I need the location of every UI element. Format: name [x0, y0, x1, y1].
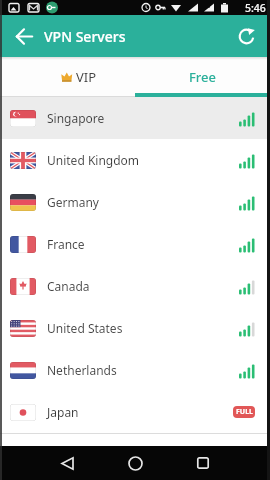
staticText: FULL — [236, 407, 253, 417]
button[interactable]: Germany — [0, 181, 270, 223]
staticText: United States — [47, 320, 123, 336]
staticText: Canada — [47, 278, 90, 294]
button[interactable]: France — [0, 223, 270, 265]
button[interactable] — [188, 448, 218, 478]
staticText: Free — [189, 68, 217, 86]
button[interactable]: Netherlands — [0, 349, 270, 391]
staticText: Japan — [47, 404, 79, 420]
button[interactable]: United States — [0, 307, 270, 349]
staticText: 5:46 — [245, 1, 266, 15]
staticText: United Kingdom — [47, 152, 140, 168]
button[interactable] — [8, 20, 40, 52]
staticText: VPN Servers — [44, 27, 126, 46]
button[interactable] — [233, 22, 261, 50]
staticText: Germany — [47, 194, 99, 210]
staticText: VIP — [76, 68, 97, 86]
staticText: France — [47, 236, 85, 252]
button[interactable]: VIP — [0, 57, 135, 97]
button[interactable]: Singapore — [0, 97, 270, 139]
button[interactable] — [120, 448, 150, 478]
button[interactable]: Japan — [0, 391, 270, 433]
button[interactable]: Canada — [0, 265, 270, 307]
staticText: Singapore — [47, 110, 105, 126]
button[interactable]: United Kingdom — [0, 139, 270, 181]
staticText: Netherlands — [47, 362, 117, 378]
button[interactable]: Free — [135, 57, 270, 97]
button[interactable] — [52, 448, 82, 478]
